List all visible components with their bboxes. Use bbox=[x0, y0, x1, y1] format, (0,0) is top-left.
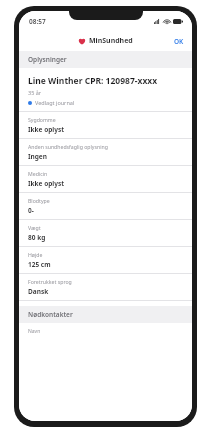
staticText: Oplysninger bbox=[28, 55, 67, 64]
staticText: Dansk bbox=[28, 287, 49, 296]
button[interactable]: Anden sundhedsfaglig oplysning bbox=[19, 139, 192, 165]
staticText: Ikke oplyst bbox=[28, 125, 65, 134]
staticText: Nødkontakter bbox=[28, 310, 73, 319]
staticText: Ikke oplyst bbox=[28, 179, 65, 188]
staticText: MinSundhed bbox=[89, 36, 133, 46]
staticText: Højde bbox=[28, 251, 43, 258]
staticText: Foretrukket sprog bbox=[28, 278, 72, 285]
staticText: 80 kg bbox=[28, 233, 46, 242]
button[interactable]: OK bbox=[166, 33, 192, 50]
staticText: 125 cm bbox=[28, 260, 51, 269]
button[interactable]: Line Winther CPR: 120987-xxxx bbox=[19, 68, 192, 111]
staticText: Medicin bbox=[28, 170, 48, 177]
staticText: Ingen bbox=[28, 152, 47, 161]
button[interactable]: Medicin bbox=[19, 166, 192, 192]
staticText: Vedlagt journal bbox=[35, 99, 75, 106]
staticText: Line Winther CPR: 120987-xxxx bbox=[28, 75, 158, 87]
button[interactable]: Sygdomme bbox=[19, 112, 192, 138]
staticText: Navn bbox=[28, 328, 41, 335]
button[interactable]: Vægt bbox=[19, 220, 192, 246]
staticText: 0- bbox=[28, 206, 34, 215]
staticText: 35 år bbox=[28, 89, 42, 96]
button[interactable]: Foretrukket sprog bbox=[19, 274, 192, 300]
staticText: 08:57 bbox=[29, 17, 46, 26]
staticText: Anden sundhedsfaglig oplysning bbox=[28, 143, 108, 150]
staticText: OK bbox=[174, 37, 184, 46]
staticText: Blodtype bbox=[28, 197, 50, 204]
button[interactable]: Højde bbox=[19, 247, 192, 273]
staticText: Vægt bbox=[28, 224, 41, 231]
staticText: Sygdomme bbox=[28, 116, 56, 123]
button[interactable]: Blodtype bbox=[19, 193, 192, 219]
